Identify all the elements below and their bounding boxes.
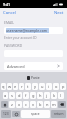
button[interactable]: Cancel bbox=[0, 8, 20, 18]
staticText: return bbox=[54, 112, 64, 116]
button[interactable]: j bbox=[44, 92, 50, 99]
staticText: g bbox=[32, 93, 35, 98]
staticText: k bbox=[53, 93, 56, 98]
button[interactable]: space bbox=[21, 110, 50, 118]
button[interactable]: Next bbox=[51, 8, 67, 18]
button[interactable]: a bbox=[3, 92, 8, 99]
button[interactable]: Advanced bbox=[4, 62, 63, 70]
staticText: Enter your account ID bbox=[4, 36, 37, 40]
button[interactable]: w bbox=[7, 83, 12, 90]
staticText: m bbox=[52, 102, 56, 107]
staticText: i bbox=[48, 84, 50, 89]
button[interactable]: b bbox=[37, 101, 43, 108]
button[interactable]: user.name@example.com bbox=[4, 27, 63, 34]
staticText: h bbox=[39, 93, 42, 98]
staticText: b bbox=[39, 102, 42, 107]
staticText: space bbox=[31, 112, 40, 116]
button[interactable]: Shift bbox=[1, 101, 8, 108]
staticText: v bbox=[32, 102, 35, 107]
staticText: o bbox=[55, 84, 58, 89]
button[interactable]: z bbox=[9, 101, 15, 108]
staticText: PASSWORD bbox=[4, 43, 23, 48]
button[interactable]: x bbox=[16, 101, 22, 108]
staticText: a bbox=[4, 93, 7, 98]
staticText: Advanced bbox=[7, 64, 25, 69]
staticText: n bbox=[46, 102, 49, 107]
staticText: z bbox=[11, 102, 13, 107]
staticText: y bbox=[34, 84, 37, 89]
button[interactable]: s bbox=[9, 92, 15, 99]
staticText: Next bbox=[54, 10, 64, 16]
button[interactable]: t bbox=[25, 83, 31, 90]
staticText: d bbox=[18, 93, 21, 98]
button[interactable]: p bbox=[60, 83, 66, 90]
staticText: u bbox=[41, 84, 44, 89]
staticText: x bbox=[18, 102, 21, 107]
button[interactable]: Backspace bbox=[58, 101, 66, 108]
button[interactable]: e bbox=[13, 83, 18, 90]
staticText: q bbox=[2, 84, 5, 89]
button[interactable]: f bbox=[23, 92, 29, 99]
button[interactable]: k bbox=[51, 92, 57, 99]
button[interactable]: y bbox=[32, 83, 38, 90]
staticText: 9:41 bbox=[3, 2, 11, 7]
button[interactable]: v bbox=[30, 101, 36, 108]
button[interactable]: l bbox=[58, 92, 64, 99]
button[interactable]: n bbox=[44, 101, 50, 108]
staticText: 123 bbox=[3, 112, 9, 116]
staticText: r bbox=[21, 84, 23, 89]
staticText: t bbox=[27, 84, 29, 89]
staticText: c bbox=[25, 102, 27, 107]
staticText: l bbox=[60, 93, 62, 98]
staticText: user.name@example.com bbox=[6, 28, 47, 33]
button[interactable]: q bbox=[1, 83, 6, 90]
button[interactable]: return bbox=[51, 110, 66, 118]
button[interactable]: i bbox=[46, 83, 52, 90]
staticText: w bbox=[8, 84, 12, 89]
button[interactable]: Paste bbox=[27, 75, 40, 80]
staticText: s bbox=[11, 93, 13, 98]
staticText: Cancel bbox=[3, 10, 17, 16]
staticText: e bbox=[14, 84, 17, 89]
button[interactable]: u bbox=[39, 83, 45, 90]
button[interactable]: d bbox=[16, 92, 22, 99]
button[interactable]: h bbox=[37, 92, 43, 99]
button[interactable]: 123 bbox=[1, 110, 11, 118]
staticText: Paste bbox=[31, 75, 40, 80]
button[interactable]: g bbox=[30, 92, 36, 99]
button[interactable]: Emoji bbox=[12, 111, 20, 117]
staticText: p bbox=[62, 84, 65, 89]
button[interactable]: m bbox=[51, 101, 57, 108]
button[interactable]: r bbox=[19, 83, 24, 90]
staticText: f bbox=[25, 93, 27, 98]
button[interactable]: o bbox=[53, 83, 59, 90]
button[interactable]: c bbox=[23, 101, 29, 108]
staticText: EMAIL bbox=[4, 20, 15, 25]
staticText: j bbox=[46, 93, 48, 98]
